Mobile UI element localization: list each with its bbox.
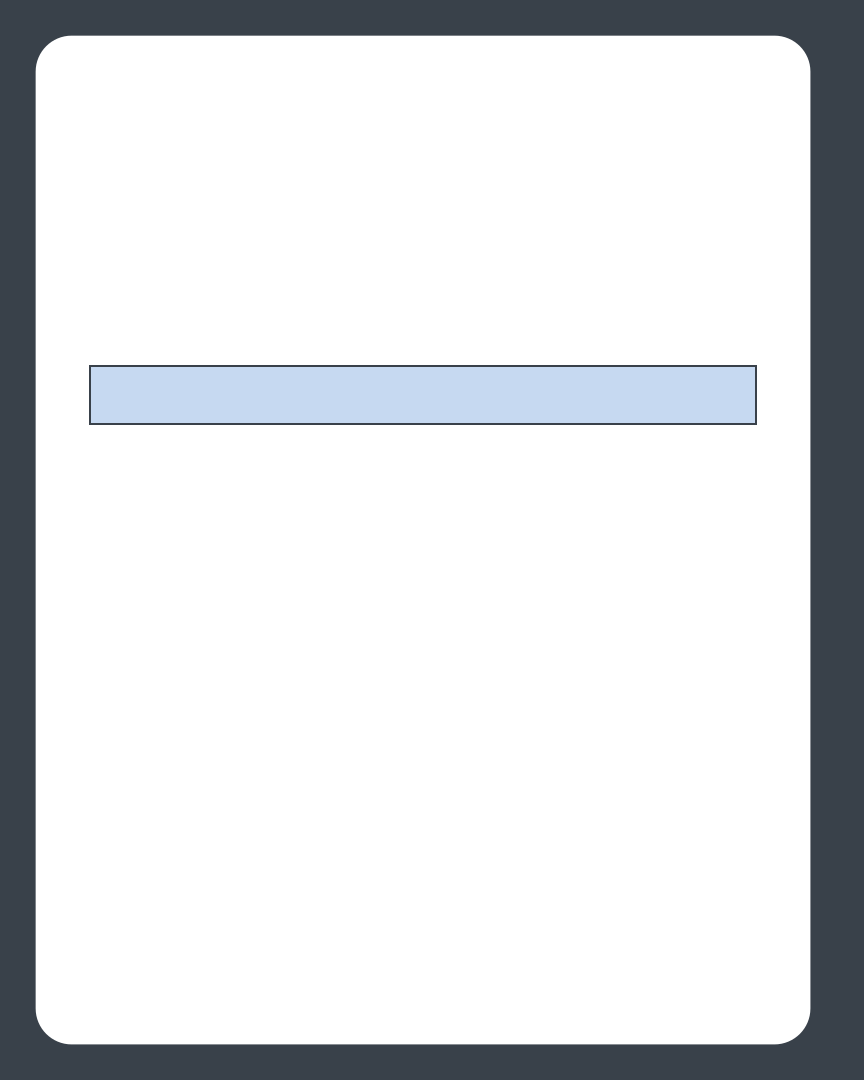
button[interactable]: Selected field <box>90 366 756 424</box>
